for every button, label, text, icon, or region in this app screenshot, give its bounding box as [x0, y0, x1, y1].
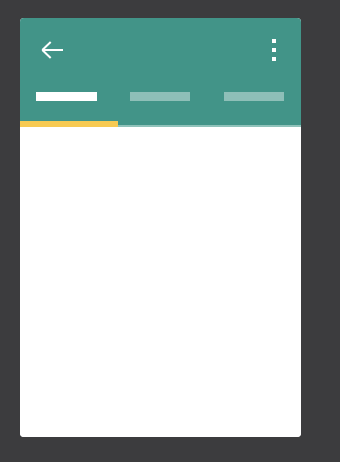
button[interactable]: Back — [28, 26, 76, 74]
button[interactable]: More options — [254, 30, 294, 70]
button[interactable]: Tab — [113, 82, 207, 121]
button[interactable]: Tab — [207, 82, 301, 121]
button[interactable]: Tab — [20, 82, 113, 121]
